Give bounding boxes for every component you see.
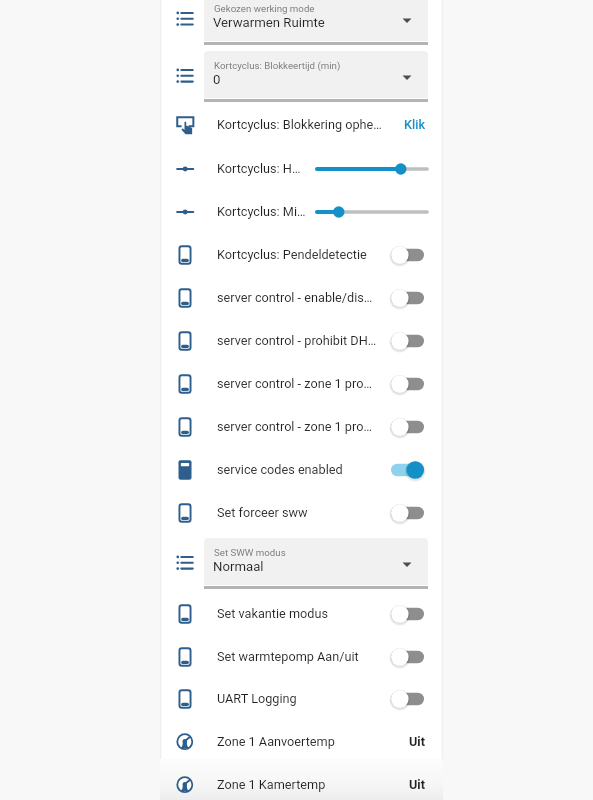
button[interactable]: Set forceer sww	[160, 491, 443, 534]
other: Expand Set SWW modus	[402, 559, 412, 565]
button[interactable]: server control - zone 1 pro…	[160, 405, 443, 448]
button[interactable]: server control - enable/dis…	[160, 276, 443, 319]
staticText: server control - enable/dis…	[217, 290, 385, 305]
other: Expand Kortcyclus Blokkeertijd	[402, 72, 412, 78]
staticText: Kortcyclus: Pendeldetectie	[217, 247, 385, 262]
button[interactable]: Kortcyclus: Pendeldetectie	[160, 233, 443, 276]
button[interactable]: Toggle Kortcyclus: Pendeldetectie, off	[391, 244, 424, 266]
button[interactable]: server control - prohibit DH…	[160, 319, 443, 362]
staticText: Kortcyclus: Mi…	[217, 204, 309, 219]
staticText: Set warmtepomp Aan/uit	[217, 649, 385, 664]
staticText: Verwarmen Ruimte	[213, 15, 325, 30]
button[interactable]: service codes enabled	[160, 448, 443, 491]
staticText: service codes enabled	[217, 462, 385, 477]
button[interactable]: Toggle UART Logging, off	[391, 688, 424, 710]
button[interactable]: Toggle server control - zone 1 pro…, off	[391, 373, 424, 395]
staticText: Zone 1 Aanvoertemp	[217, 734, 403, 749]
button[interactable]: Zone 1 Kamertemp	[160, 763, 443, 800]
staticText: Kortcyclus: Blokkeertijd (min)	[214, 60, 341, 71]
button[interactable]: Kortcyclus Blokkeertijd	[160, 51, 443, 102]
button[interactable]: Kortcyclus: H…	[160, 147, 443, 190]
staticText: Gekozen werking mode	[214, 3, 315, 14]
staticText: server control - zone 1 pro…	[217, 376, 385, 391]
staticText: server control - prohibit DH…	[217, 333, 385, 348]
button[interactable]: Toggle server control - zone 1 pro…, off	[391, 416, 424, 438]
button[interactable]: Toggle server control - enable/dis…, off	[391, 287, 424, 309]
staticText: Klik	[404, 117, 426, 132]
staticText: Set SWW modus	[214, 547, 286, 558]
button[interactable]: Toggle Set warmtepomp Aan/uit, off	[391, 646, 424, 668]
other: Expand Gekozen werking mode	[402, 15, 412, 21]
button[interactable]: Set SWW modus	[160, 538, 443, 589]
staticText: Set vakantie modus	[217, 606, 385, 621]
button[interactable]: Set vakantie modus	[160, 592, 443, 635]
staticText: Kortcyclus: Blokkering ophe…	[217, 117, 398, 132]
button[interactable]: Toggle service codes enabled, on	[391, 459, 424, 481]
staticText: Uit	[409, 777, 426, 792]
staticText: server control - zone 1 pro…	[217, 419, 385, 434]
button[interactable]: Gekozen werking mode	[160, 0, 443, 45]
staticText: Uit	[409, 734, 426, 749]
staticText: Kortcyclus: H…	[217, 161, 309, 176]
button[interactable]: server control - zone 1 pro…	[160, 362, 443, 405]
button[interactable]: Slider Kortcyclus: H…	[317, 159, 427, 179]
button[interactable]: Kortcyclus: Mi…	[160, 190, 443, 233]
other: Gekozen werking mode	[204, 0, 428, 41]
button[interactable]: Set warmtepomp Aan/uit	[160, 635, 443, 678]
staticText: Zone 1 Kamertemp	[217, 777, 403, 792]
button[interactable]: Kortcyclus: Blokkering ophe…	[160, 103, 443, 146]
button[interactable]: Slider Kortcyclus: Mi…	[317, 202, 427, 222]
other: Set SWW modus	[204, 538, 428, 585]
button[interactable]: Toggle Set vakantie modus, off	[391, 603, 424, 625]
button[interactable]: Toggle Set forceer sww, off	[391, 502, 424, 524]
staticText: Set forceer sww	[217, 505, 385, 520]
staticText: Normaal	[213, 559, 264, 574]
staticText: UART Logging	[217, 691, 385, 706]
button[interactable]: Toggle server control - prohibit DH…, of…	[391, 330, 424, 352]
button[interactable]: Zone 1 Aanvoertemp	[160, 720, 443, 763]
staticText: 0	[213, 72, 221, 87]
button[interactable]: UART Logging	[160, 677, 443, 720]
other: Kortcyclus Blokkeertijd	[204, 51, 428, 98]
